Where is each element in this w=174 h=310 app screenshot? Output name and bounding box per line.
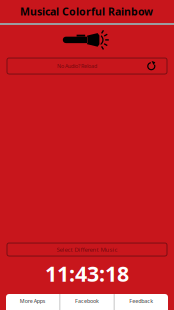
button[interactable]: More Apps bbox=[6, 294, 59, 310]
button[interactable]: No Audio? Reload bbox=[7, 58, 167, 74]
button[interactable]: Feedback bbox=[115, 294, 168, 310]
staticText: Select Different Music bbox=[56, 245, 117, 254]
staticText: No Audio? Reload bbox=[57, 62, 97, 70]
button[interactable]: Select Different Music bbox=[7, 243, 167, 256]
button[interactable]: Facebook bbox=[60, 294, 114, 310]
staticText: More Apps bbox=[20, 297, 46, 305]
staticText: Musical Colorful Rainbow bbox=[20, 4, 153, 19]
staticText: 11:43:18 bbox=[45, 259, 129, 288]
staticText: Feedback bbox=[129, 297, 153, 305]
staticText: Facebook bbox=[75, 297, 99, 305]
